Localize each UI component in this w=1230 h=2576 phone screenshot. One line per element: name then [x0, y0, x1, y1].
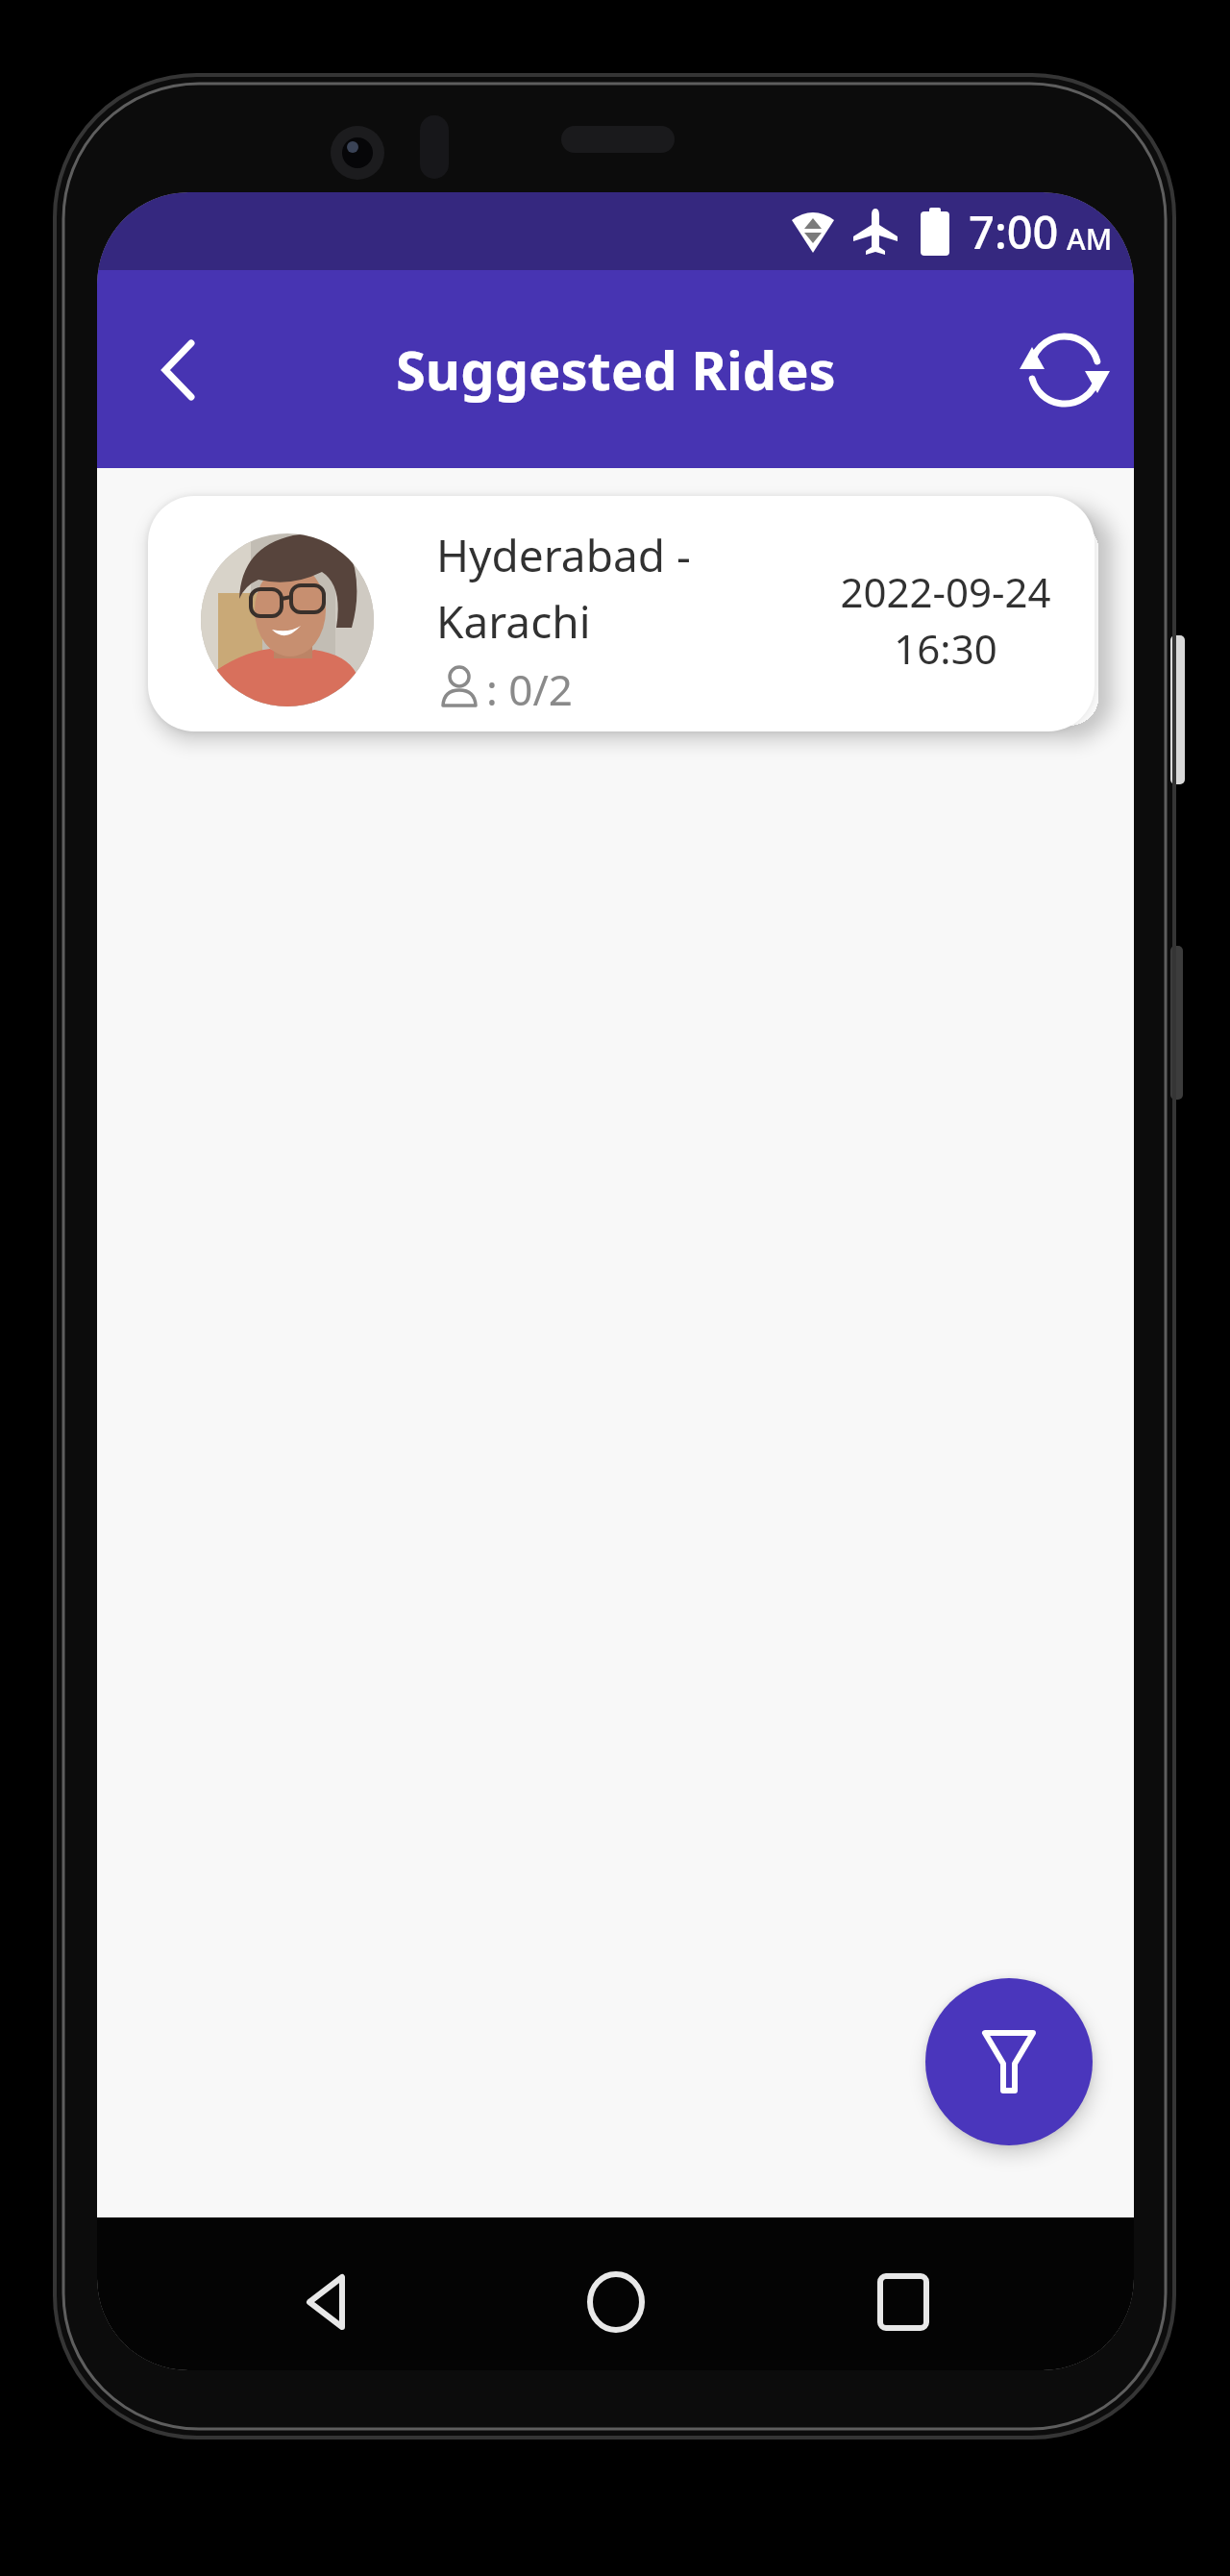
staticText: 7:00	[969, 201, 1059, 262]
button[interactable]: Hyderabad - Karachi	[148, 496, 1095, 731]
button[interactable]	[1007, 312, 1122, 428]
staticText: Hyderabad - Karachi	[436, 525, 691, 652]
button[interactable]	[121, 312, 236, 428]
staticText: 2022-09-24 16:30	[801, 564, 1090, 677]
staticText: : 0/2	[486, 660, 573, 718]
button[interactable]	[549, 2235, 683, 2369]
staticText: AM	[1067, 219, 1113, 259]
staticText: Suggested Rides	[396, 333, 836, 406]
button[interactable]	[925, 1978, 1093, 2145]
button[interactable]	[261, 2235, 396, 2369]
button[interactable]	[836, 2235, 971, 2369]
